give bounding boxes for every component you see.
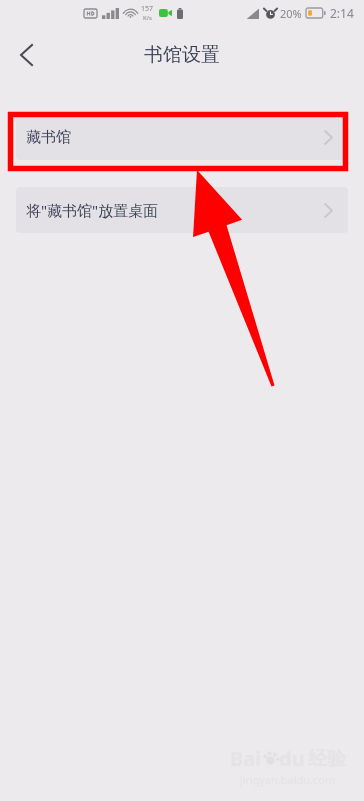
button[interactable]: 藏书馆: [16, 114, 348, 160]
staticText: 157: [141, 4, 154, 14]
button[interactable]: 将"藏书馆"放置桌面: [16, 187, 348, 233]
button[interactable]: 返回: [4, 33, 48, 77]
staticText: 2:14: [330, 5, 354, 21]
staticText: 经验: [308, 747, 346, 771]
staticText: 藏书馆: [26, 128, 71, 147]
staticText: K/s: [143, 14, 152, 22]
staticText: 书馆设置: [144, 43, 220, 67]
staticText: 20%: [280, 6, 302, 21]
staticText: 将"藏书馆"放置桌面: [26, 200, 159, 220]
